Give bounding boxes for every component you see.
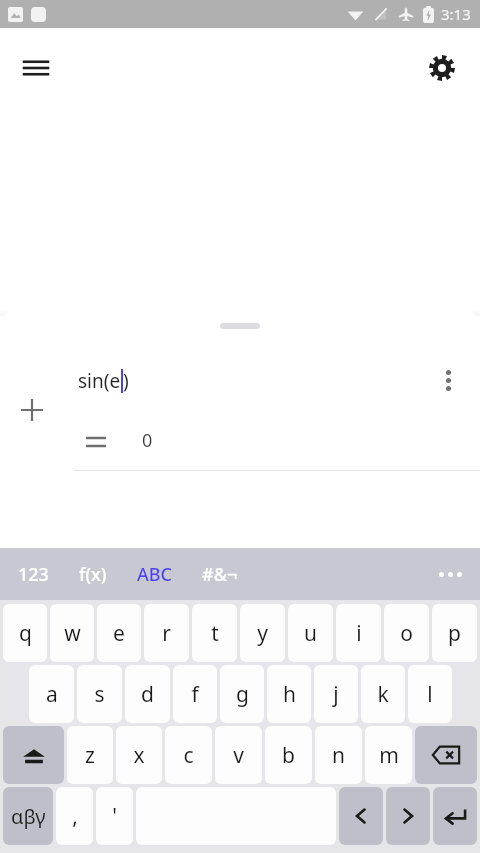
button[interactable]: r [144, 604, 189, 662]
staticText: z [85, 741, 95, 770]
staticText: i [356, 619, 362, 648]
button[interactable]: h [267, 665, 311, 723]
button[interactable]: Enter [433, 787, 477, 845]
button[interactable]: Backspace [415, 726, 477, 784]
button[interactable]: z [67, 726, 113, 784]
button[interactable]: s [77, 665, 122, 723]
button[interactable]: t [192, 604, 237, 662]
staticText: t [211, 619, 219, 648]
staticText: w [64, 619, 81, 648]
staticText: f [191, 680, 199, 709]
button[interactable]: Settings [418, 44, 466, 92]
button[interactable]: i [336, 604, 381, 662]
staticText: y [257, 619, 268, 648]
staticText: 3:13 [441, 4, 471, 24]
staticText: u [304, 619, 317, 648]
button[interactable]: Shift [3, 726, 64, 784]
button[interactable]: ABC [133, 556, 176, 593]
button[interactable]: Menu [12, 44, 60, 92]
button[interactable]: a [29, 665, 74, 723]
staticText: l [427, 680, 433, 709]
button[interactable]: ' [96, 787, 133, 845]
button[interactable]: Right [386, 787, 430, 845]
button[interactable]: f [173, 665, 217, 723]
staticText: m [379, 741, 399, 770]
staticText: 123 [18, 562, 49, 587]
staticText: v [233, 741, 244, 770]
button[interactable]: , [56, 787, 93, 845]
staticText: ' [112, 802, 117, 831]
staticText: ) [123, 368, 129, 394]
button[interactable]: m [365, 726, 412, 784]
button[interactable]: d [125, 665, 170, 723]
button[interactable]: x [116, 726, 162, 784]
button[interactable]: o [384, 604, 429, 662]
staticText: #&¬ [202, 562, 238, 587]
staticText: q [19, 619, 32, 648]
staticText: x [133, 741, 145, 770]
staticText: r [162, 619, 171, 648]
staticText: , [72, 802, 78, 831]
button[interactable]: More keyboard options [430, 554, 470, 594]
button[interactable]: e [97, 604, 141, 662]
staticText: sin(e [78, 368, 121, 394]
staticText: j [333, 680, 339, 709]
staticText: a [46, 680, 58, 709]
button[interactable]: w [50, 604, 94, 662]
staticText: n [332, 741, 345, 770]
button[interactable]: p [432, 604, 477, 662]
button[interactable]: f(x) [75, 556, 111, 593]
staticText: αβγ [11, 803, 46, 830]
button[interactable]: g [220, 665, 264, 723]
staticText: k [377, 680, 389, 709]
button[interactable]: b [265, 726, 312, 784]
staticText: e [113, 619, 125, 648]
button[interactable]: y [240, 604, 285, 662]
button[interactable]: q [3, 604, 47, 662]
staticText: o [400, 619, 413, 648]
button[interactable]: j [314, 665, 358, 723]
button[interactable]: αβγ [3, 787, 53, 845]
button[interactable]: n [315, 726, 362, 784]
button[interactable]: Add expression [10, 388, 54, 432]
staticText: b [282, 741, 295, 770]
button[interactable]: #&¬ [198, 556, 242, 593]
button[interactable]: k [361, 665, 405, 723]
button[interactable]: c [165, 726, 212, 784]
staticText: d [141, 680, 154, 709]
button[interactable]: Left [339, 787, 383, 845]
staticText: h [283, 680, 296, 709]
button[interactable]: l [408, 665, 452, 723]
staticText: s [94, 680, 105, 709]
button[interactable]: v [215, 726, 262, 784]
staticText: g [236, 680, 249, 709]
button[interactable]: 123 [14, 556, 53, 593]
button[interactable]: u [288, 604, 333, 662]
staticText: 0 [142, 428, 153, 453]
button[interactable]: More options [430, 362, 466, 398]
staticText: f(x) [79, 562, 107, 587]
staticText: ABC [137, 562, 172, 587]
staticText: p [448, 619, 461, 648]
staticText: c [183, 741, 194, 770]
